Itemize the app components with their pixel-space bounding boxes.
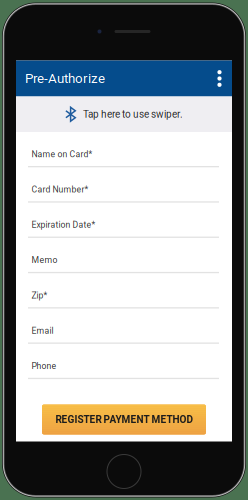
button[interactable]: Memo bbox=[28, 238, 219, 273]
button[interactable]: More options bbox=[208, 60, 230, 96]
staticText: Memo bbox=[31, 255, 57, 265]
staticText: Phone bbox=[31, 361, 56, 371]
button[interactable]: Tap here to use swiper. bbox=[16, 96, 232, 132]
button[interactable]: Zip* bbox=[28, 273, 219, 308]
staticText: Zip* bbox=[31, 290, 47, 300]
staticText: Tap here to use swiper. bbox=[83, 108, 183, 120]
button[interactable]: Phone bbox=[28, 344, 219, 379]
staticText: Name on Card* bbox=[31, 149, 92, 159]
staticText: Expiration Date* bbox=[31, 220, 95, 230]
staticText: Card Number* bbox=[31, 184, 88, 195]
button[interactable]: REGISTER PAYMENT METHOD bbox=[42, 404, 206, 434]
button[interactable]: Expiration Date* bbox=[28, 203, 219, 238]
staticText: Email bbox=[31, 326, 53, 336]
button[interactable]: Name on Card* bbox=[28, 132, 219, 167]
staticText: Pre-Authorize bbox=[25, 71, 105, 86]
button[interactable]: Card Number* bbox=[28, 167, 219, 203]
staticText: REGISTER PAYMENT METHOD bbox=[55, 414, 192, 425]
button[interactable]: Email bbox=[28, 308, 219, 344]
